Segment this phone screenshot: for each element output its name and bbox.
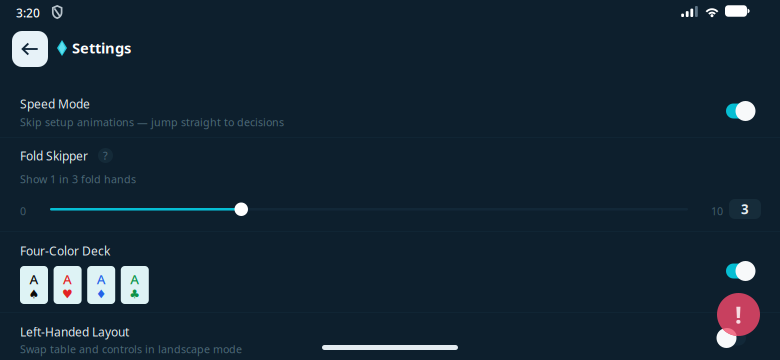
staticText: 0: [20, 204, 26, 218]
staticText: Speed Mode: [20, 96, 90, 112]
button[interactable]: About Fold Skipper: [98, 148, 113, 163]
staticText: Four-Color Deck: [20, 243, 110, 259]
staticText: ?: [103, 148, 108, 163]
button[interactable]: Ace of spades: [20, 266, 48, 304]
staticText: Left-Handed Layout: [20, 324, 129, 340]
button[interactable]: Back: [12, 31, 48, 67]
staticText: A: [29, 270, 38, 288]
staticText: ♠: [28, 287, 39, 301]
staticText: Fold Skipper: [20, 148, 88, 164]
staticText: ♥: [62, 287, 73, 301]
button[interactable]: Report a problem: [717, 293, 760, 336]
staticText: A: [130, 270, 139, 288]
staticText: Skip setup animations — jump straight to…: [20, 115, 284, 129]
staticText: 3:20: [16, 5, 40, 21]
button[interactable]: Four-Color Deck: [721, 261, 760, 281]
staticText: A: [97, 270, 106, 288]
button[interactable]: Ace of hearts: [54, 266, 82, 304]
staticText: ♦: [96, 287, 107, 301]
staticText: ♣: [129, 287, 140, 301]
staticText: Swap table and controls in landscape mod…: [20, 342, 242, 356]
staticText: !: [735, 299, 742, 330]
staticText: Settings: [72, 38, 131, 57]
button[interactable]: Left-Handed Layout: [712, 328, 751, 348]
staticText: Show 1 in 3 fold hands: [20, 172, 136, 186]
staticText: 3: [741, 200, 749, 218]
button[interactable]: Speed Mode: [721, 101, 760, 121]
staticText: A: [63, 270, 72, 288]
staticText: 10: [711, 204, 723, 218]
button[interactable]: Ace of clubs: [121, 266, 149, 304]
button[interactable]: Ace of diamonds: [87, 266, 115, 304]
